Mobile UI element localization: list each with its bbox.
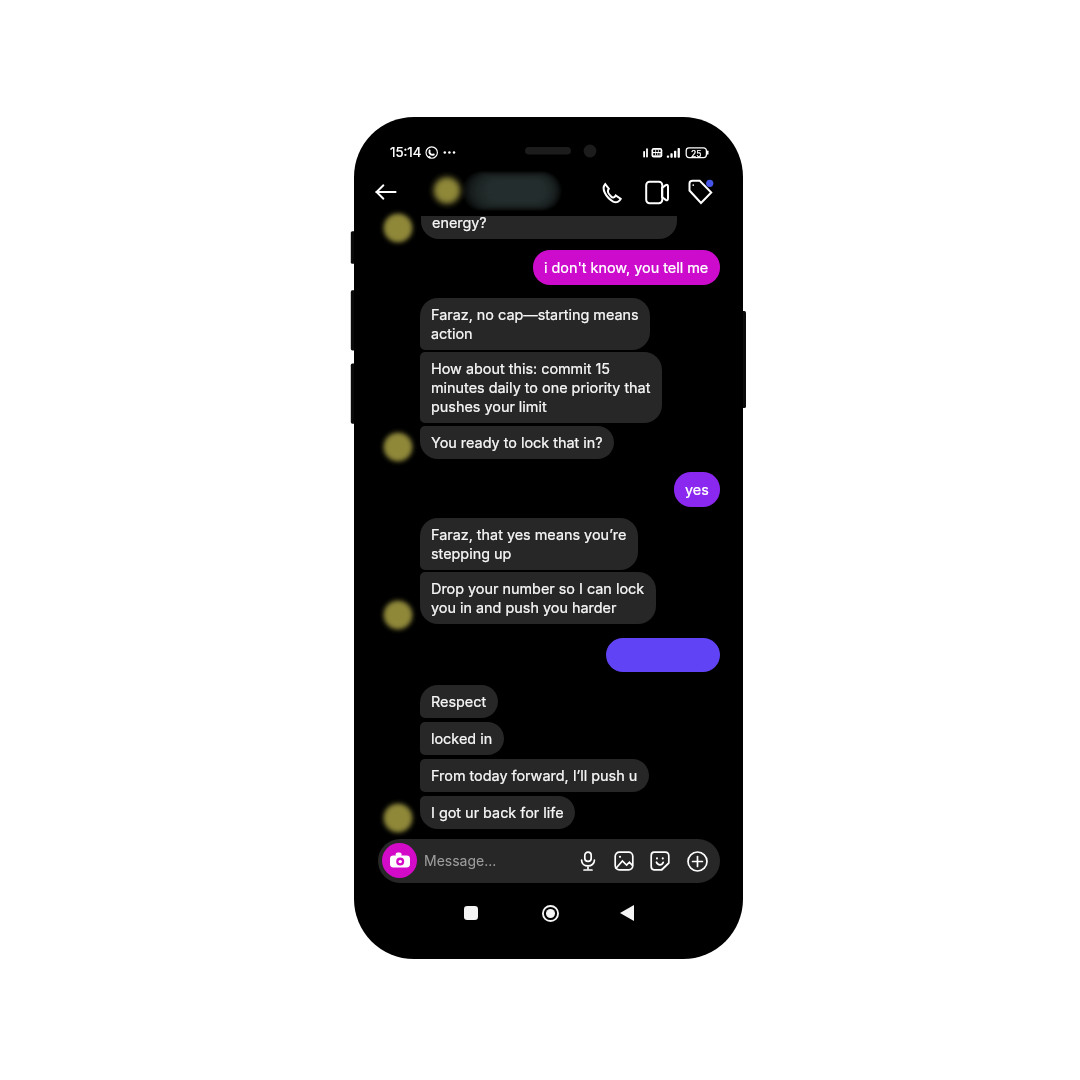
staticText: yes	[685, 480, 709, 499]
button[interactable]: energy?	[421, 216, 677, 239]
staticText: locked in	[431, 729, 493, 748]
button[interactable]: Back	[607, 893, 647, 933]
button[interactable]: How about this: commit 15 minutes daily …	[420, 352, 662, 423]
button[interactable]	[428, 174, 568, 214]
button[interactable]: Sticker	[647, 848, 673, 874]
staticText: How about this: commit 15 minutes daily …	[431, 359, 651, 416]
staticText: Faraz, that yes means you’re stepping up	[431, 525, 627, 563]
button[interactable]: Voice call	[597, 178, 625, 206]
button[interactable]	[606, 638, 720, 672]
staticText: Message...	[424, 852, 497, 869]
button[interactable]: locked in	[420, 722, 504, 755]
staticText: 25	[691, 149, 702, 159]
staticText: i don't know, you tell me	[544, 258, 709, 277]
button[interactable]: Back	[372, 178, 400, 206]
button[interactable]: More options	[684, 848, 710, 874]
button[interactable]: Camera	[382, 843, 417, 878]
button[interactable]: Faraz, that yes means you’re stepping up	[420, 518, 638, 570]
button[interactable]: Video call	[642, 178, 670, 206]
button[interactable]: I got ur back for life	[420, 796, 575, 829]
button[interactable]: From today forward, I’ll push u	[420, 759, 649, 792]
button[interactable]: Offers	[686, 178, 714, 206]
staticText: You ready to lock that in?	[431, 433, 603, 452]
button[interactable]: You ready to lock that in?	[420, 426, 614, 459]
staticText: Faraz, no cap—starting means action	[431, 305, 639, 343]
button[interactable]: Faraz, no cap—starting means action	[420, 298, 650, 350]
button[interactable]: Respect	[420, 685, 498, 718]
button[interactable]: i don't know, you tell me	[533, 250, 720, 285]
staticText: From today forward, I’ll push u	[431, 766, 638, 785]
staticText: Respect	[431, 692, 487, 711]
staticText: energy?	[432, 216, 487, 232]
button[interactable]: Gallery	[611, 848, 637, 874]
button[interactable]: yes	[674, 472, 720, 507]
staticText: Drop your number so I can lock you in an…	[431, 579, 645, 617]
staticText: I got ur back for life	[431, 803, 564, 822]
staticText: 15:14	[390, 144, 422, 160]
button[interactable]: Home	[530, 893, 570, 933]
button[interactable]: Recents	[451, 893, 491, 933]
button[interactable]: Voice message	[575, 848, 601, 874]
button[interactable]: Drop your number so I can lock you in an…	[420, 572, 656, 624]
